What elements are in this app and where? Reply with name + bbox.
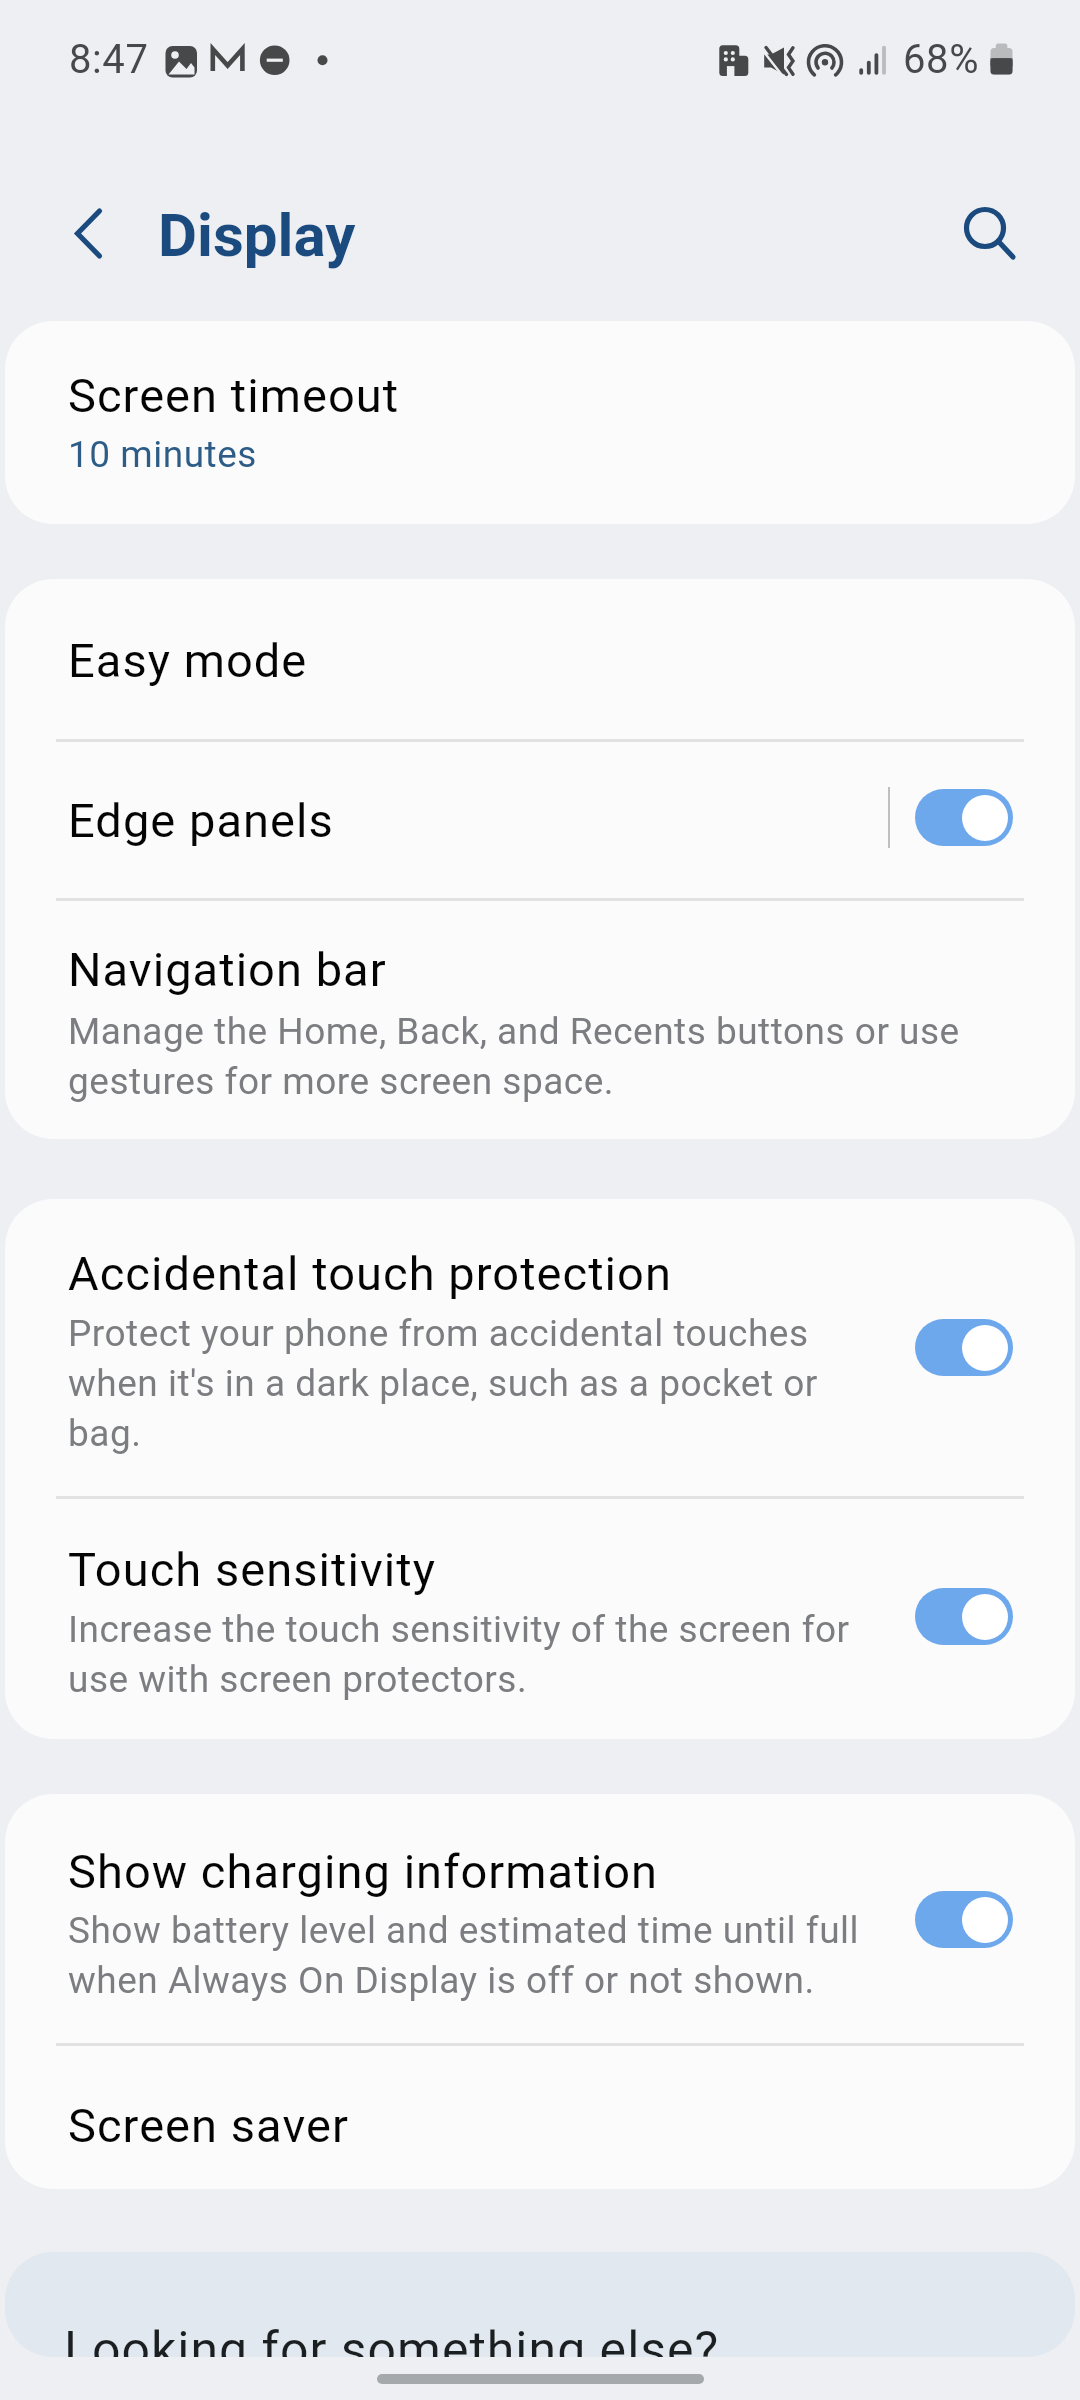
button[interactable]: Screen saver (5, 2046, 1075, 2189)
staticText: 10 minutes (68, 432, 257, 476)
staticText: Protect your phone from accidental touch… (68, 1306, 828, 1456)
staticText: Touch sensitivity (68, 1542, 436, 1598)
button[interactable]: Toggle setting (915, 1891, 1013, 1948)
button[interactable]: Screen timeout (5, 321, 1075, 524)
staticText: 68% (903, 36, 980, 83)
button[interactable]: Toggle setting (915, 789, 1013, 846)
staticText: Display (158, 200, 356, 270)
button[interactable]: Touch sensitivity (5, 1499, 1075, 1739)
button[interactable]: Navigation bar (5, 901, 1075, 1139)
staticText: Edge panels (68, 793, 334, 849)
staticText: Screen saver (68, 2098, 349, 2154)
staticText: Increase the touch sensitivity of the sc… (68, 1602, 873, 1702)
staticText: Navigation bar (68, 942, 387, 998)
staticText: Easy mode (68, 633, 308, 689)
button[interactable]: Edge panels (5, 742, 1075, 898)
staticText: Accidental touch protection (68, 1246, 672, 1302)
staticText: 8:47 (69, 36, 149, 83)
staticText: Screen timeout (68, 368, 400, 424)
button[interactable]: Search (940, 190, 1030, 280)
button[interactable]: Looking for something else? (5, 2252, 1075, 2357)
staticText: Show battery level and estimated time un… (68, 1903, 888, 2003)
button[interactable]: Toggle setting (915, 1319, 1013, 1376)
button[interactable]: Toggle setting (915, 1588, 1013, 1645)
staticText: Manage the Home, Back, and Recents butto… (68, 1004, 978, 1104)
button[interactable]: Easy mode (5, 579, 1075, 739)
button[interactable]: Navigate up (40, 188, 136, 284)
button[interactable]: Show charging information (5, 1794, 1075, 2043)
staticText: Show charging information (68, 1844, 658, 1900)
staticText: Looking for something else? (64, 2321, 720, 2357)
button[interactable]: Accidental touch protection (5, 1199, 1075, 1496)
